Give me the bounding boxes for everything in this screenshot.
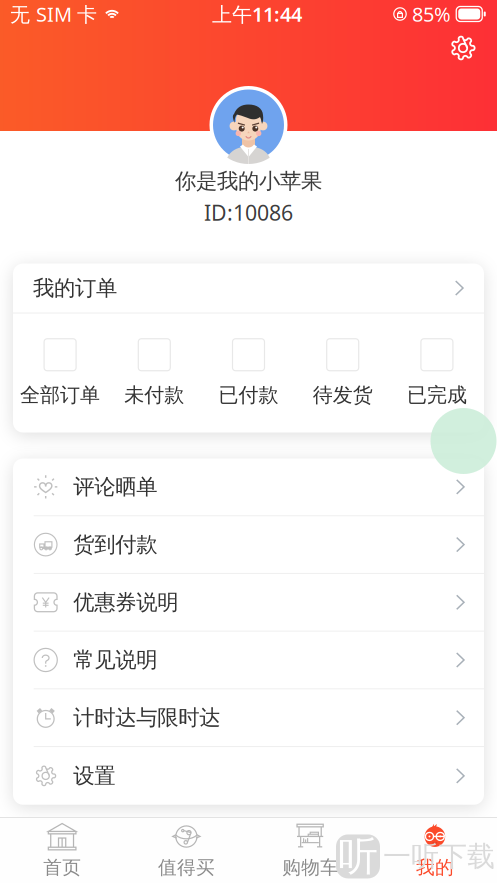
button[interactable]: 优惠券说明 [13,574,484,632]
staticText: 设置 [73,763,115,789]
staticText: 全部订单 [20,383,100,407]
button[interactable]: 值得买 [124,818,248,883]
button[interactable]: 常见说明 [13,632,484,689]
button[interactable]: 货到付款 [13,516,484,574]
staticText: 85% [412,1,451,27]
staticText: 值得买 [158,856,215,879]
button[interactable]: 已付款 [201,339,296,407]
button[interactable]: 全部订单 [13,339,107,407]
button[interactable]: 计时达与限时达 [13,689,484,747]
button[interactable]: 设置 [13,747,484,805]
staticText: 货到付款 [73,531,157,558]
button[interactable]: Settings [443,28,483,68]
button[interactable]: 评论晒单 [13,458,484,516]
staticText: 上午11:44 [212,1,302,27]
staticText: 已付款 [218,383,278,407]
staticText: 我的 [416,856,454,879]
button[interactable]: 我的订单 [13,263,484,312]
staticText: 听 [338,832,378,881]
staticText: 待发货 [313,383,373,407]
staticText: 计时达与限时达 [73,705,220,731]
staticText: ID:10086 [204,198,293,226]
button[interactable]: 未付款 [107,339,201,407]
staticText: 你是我的小苹果 [175,168,322,194]
staticText: 未付款 [124,383,184,407]
button[interactable]: 已完成 [390,339,484,407]
button[interactable]: 我的 [373,818,497,883]
button[interactable]: 购物车 [248,818,373,883]
button[interactable]: 待发货 [296,339,390,407]
staticText: 已完成 [407,383,467,407]
button[interactable]: 首页 [0,818,124,883]
staticText: 无 SIM 卡 [10,1,97,27]
staticText: 一听下载 [383,839,495,874]
staticText: 我的订单 [33,275,117,301]
staticText: 购物车 [282,856,339,879]
staticText: 首页 [43,856,81,879]
staticText: 优惠券说明 [73,589,178,615]
staticText: 评论晒单 [73,474,157,500]
staticText: 常见说明 [73,647,157,673]
